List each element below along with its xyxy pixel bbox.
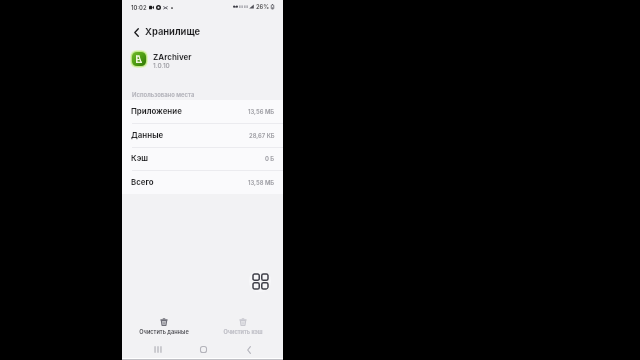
staticText: 28,67 КБ: [249, 132, 275, 139]
staticText: Использовано места: [132, 91, 195, 98]
staticText: 0 Б: [265, 155, 275, 162]
staticText: Хранилище: [145, 26, 201, 37]
button[interactable]: Recents: [142, 340, 174, 359]
button[interactable]: Данные: [122, 124, 283, 148]
staticText: 13,56 МБ: [248, 108, 275, 115]
staticText: Кэш: [131, 153, 148, 162]
staticText: Очистить кэш: [223, 329, 263, 336]
button[interactable]: Всего: [122, 171, 283, 195]
staticText: Приложение: [131, 106, 182, 115]
staticText: Очистить данные: [139, 329, 189, 336]
button[interactable]: Очистить кэш: [211, 312, 275, 338]
staticText: 13,58 МБ: [248, 179, 275, 186]
staticText: ZArchiver: [153, 52, 192, 62]
button[interactable]: Home: [187, 340, 219, 359]
button[interactable]: App grid: [249, 270, 271, 292]
button[interactable]: Back: [128, 24, 144, 40]
button[interactable]: Кэш: [122, 147, 283, 171]
staticText: 10:02: [131, 4, 147, 11]
staticText: 26%: [256, 3, 270, 10]
staticText: Данные: [131, 130, 164, 139]
staticText: Всего: [131, 177, 154, 186]
button[interactable]: Приложение: [122, 100, 283, 124]
button[interactable]: Очистить данные: [132, 312, 196, 338]
button[interactable]: Back: [233, 340, 265, 359]
staticText: 1.0.10: [153, 62, 170, 70]
